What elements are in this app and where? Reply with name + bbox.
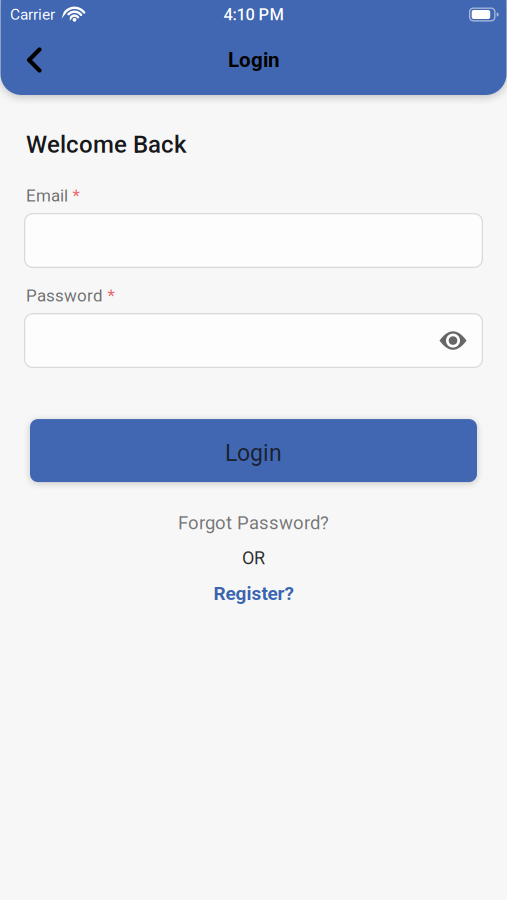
staticText: 4:10 PM <box>223 5 283 24</box>
staticText: Email <box>26 186 68 205</box>
staticText: Password <box>26 286 103 306</box>
staticText: Register? <box>213 582 293 605</box>
button[interactable]: Login <box>30 419 477 482</box>
staticText: Carrier <box>10 5 55 24</box>
staticText: * <box>72 186 79 205</box>
button[interactable]: Back <box>0 29 42 90</box>
staticText: OR <box>242 547 265 569</box>
button[interactable]: Forgot Password? <box>178 512 329 534</box>
staticText: Forgot Password? <box>178 512 329 534</box>
button[interactable]: Password <box>24 313 483 368</box>
staticText: * <box>107 286 114 306</box>
staticText: Login <box>225 440 282 467</box>
button[interactable]: Email <box>24 213 483 268</box>
staticText: Welcome Back <box>26 130 187 159</box>
button[interactable]: Show password <box>439 331 483 350</box>
staticText: Login <box>228 48 279 72</box>
button[interactable]: Register? <box>213 582 293 605</box>
